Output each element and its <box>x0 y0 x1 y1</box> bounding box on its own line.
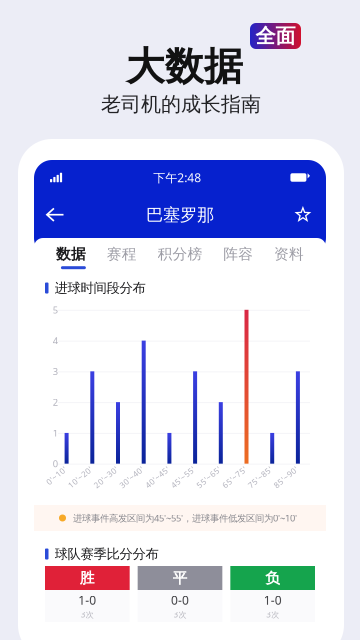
staticText: 65'~75' <box>220 473 249 484</box>
staticText: 老司机的成长指南 <box>101 92 261 117</box>
staticText: 进球时间段分布 <box>54 280 145 296</box>
staticText: 40'~45' <box>143 473 172 484</box>
staticText: 全面 <box>255 24 295 48</box>
staticText: 1-0 <box>78 592 96 608</box>
staticText: 数据 <box>56 245 86 263</box>
button[interactable]: 收藏 <box>288 202 318 228</box>
staticText: 5 <box>53 304 58 316</box>
button[interactable]: 平 <box>138 566 222 622</box>
staticText: 1-0 <box>264 592 282 608</box>
staticText: 胜 <box>80 569 95 587</box>
staticText: 大数据 <box>126 43 243 90</box>
staticText: 3次 <box>81 609 94 620</box>
button[interactable]: 胜 <box>45 566 130 622</box>
staticText: 1 <box>53 427 58 439</box>
staticText: 85'~90' <box>272 473 301 484</box>
staticText: 0'~10' <box>46 473 70 484</box>
staticText: 积分榜 <box>157 245 202 263</box>
staticText: 0-0 <box>171 592 189 608</box>
button[interactable]: 资料 <box>274 241 304 267</box>
button[interactable]: 数据 <box>56 241 86 267</box>
staticText: 75'~85' <box>246 473 275 484</box>
staticText: 30'~40' <box>118 473 147 484</box>
staticText: 3 <box>53 365 58 378</box>
staticText: 3次 <box>266 609 279 620</box>
staticText: 2 <box>53 396 58 408</box>
button[interactable]: 阵容 <box>223 241 253 267</box>
staticText: 20'~30' <box>92 473 121 484</box>
staticText: 阵容 <box>223 245 253 263</box>
staticText: 进球事件高发区间为45'~55'，进球事件低发区间为0'~10' <box>73 512 297 524</box>
staticText: 45'~55' <box>169 473 198 484</box>
button[interactable]: 返回 <box>38 202 72 228</box>
button[interactable]: 积分榜 <box>157 241 202 267</box>
staticText: 平 <box>172 569 187 587</box>
staticText: 负 <box>265 569 280 587</box>
button[interactable]: 赛程 <box>107 241 137 267</box>
staticText: 巴塞罗那 <box>146 204 214 226</box>
button[interactable]: 负 <box>230 566 315 622</box>
staticText: 0 <box>53 457 58 470</box>
staticText: 3次 <box>173 609 186 620</box>
staticText: 资料 <box>274 245 304 263</box>
staticText: 下午2:48 <box>153 169 201 185</box>
staticText: 赛程 <box>107 245 137 263</box>
staticText: 球队赛季比分分布 <box>54 546 158 562</box>
staticText: 10'~20' <box>66 473 95 484</box>
staticText: 4 <box>53 334 58 347</box>
staticText: 55'~65' <box>195 473 224 484</box>
